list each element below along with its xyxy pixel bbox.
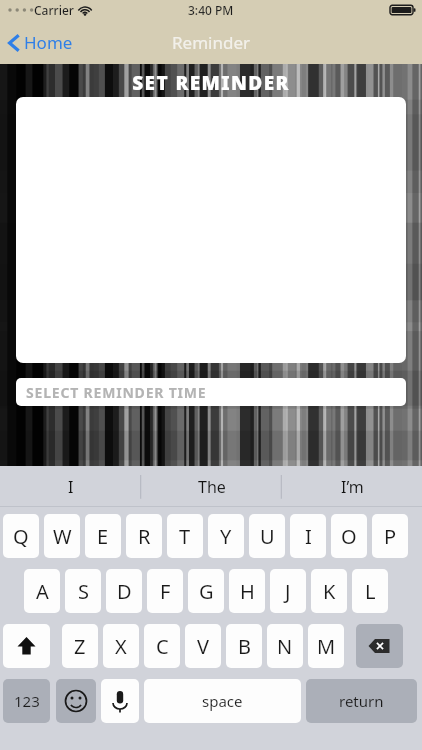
button[interactable]: A (24, 569, 60, 613)
staticText: 123 (14, 691, 40, 711)
button[interactable]: H (229, 569, 265, 613)
button[interactable]: I’m (282, 466, 422, 507)
button[interactable]: P (372, 514, 408, 558)
staticText: V (197, 633, 209, 660)
staticText: J (285, 578, 291, 605)
staticText: L (365, 578, 376, 605)
staticText: G (199, 578, 214, 605)
staticText: Reminder (172, 31, 251, 54)
staticText: P (384, 523, 397, 550)
button[interactable]: SELECT REMINDER TIME (16, 378, 406, 406)
staticText: R (138, 523, 151, 550)
button[interactable]: R (126, 514, 162, 558)
staticText: W (53, 523, 72, 550)
staticText: S (78, 578, 89, 605)
staticText: C (156, 633, 169, 660)
staticText: Y (220, 523, 232, 550)
button[interactable]: Dictate (101, 679, 139, 723)
button[interactable]: L (352, 569, 388, 613)
button[interactable]: Backspace (356, 624, 403, 668)
button[interactable]: U (249, 514, 285, 558)
button[interactable]: Q (3, 514, 39, 558)
button[interactable]: M (308, 624, 344, 668)
button[interactable]: J (270, 569, 306, 613)
button[interactable]: G (188, 569, 224, 613)
button[interactable]: D (106, 569, 142, 613)
button[interactable]: Shift (3, 624, 50, 668)
staticText: I (305, 523, 312, 550)
button[interactable]: O (331, 514, 367, 558)
staticText: SET REMINDER (132, 70, 290, 96)
staticText: T (179, 523, 191, 550)
button[interactable]: K (311, 569, 347, 613)
button[interactable]: V (185, 624, 221, 668)
staticText: Z (74, 633, 86, 660)
button[interactable]: F (147, 569, 183, 613)
button[interactable]: I (290, 514, 326, 558)
staticText: I’m (341, 476, 364, 498)
button[interactable]: The (141, 466, 282, 507)
staticText: D (117, 578, 132, 605)
button[interactable]: I (0, 466, 141, 507)
button[interactable]: N (267, 624, 303, 668)
staticText: N (277, 633, 293, 660)
staticText: return (339, 691, 384, 711)
button[interactable]: X (103, 624, 139, 668)
button[interactable]: Emoji (56, 679, 96, 723)
staticText: F (160, 578, 171, 605)
staticText: U (260, 523, 275, 550)
staticText: Carrier (34, 2, 74, 18)
staticText: X (115, 633, 127, 660)
button[interactable]: return (306, 679, 417, 723)
staticText: K (323, 578, 336, 605)
button[interactable]: T (167, 514, 203, 558)
button[interactable]: W (44, 514, 80, 558)
staticText: E (97, 523, 109, 550)
button[interactable]: Home (8, 31, 73, 54)
button[interactable]: space (144, 679, 301, 723)
staticText: O (341, 523, 357, 550)
staticText: I (68, 476, 74, 498)
button[interactable]: E (85, 514, 121, 558)
staticText: space (202, 691, 243, 711)
button[interactable]: S (65, 569, 101, 613)
button[interactable]: 123 (3, 679, 50, 723)
button[interactable]: Z (62, 624, 98, 668)
staticText: Q (13, 523, 29, 550)
button[interactable]: Y (208, 514, 244, 558)
staticText: H (240, 578, 255, 605)
button[interactable]: B (226, 624, 262, 668)
button[interactable] (16, 97, 406, 363)
staticText: SELECT REMINDER TIME (26, 383, 207, 402)
staticText: 3:40 PM (188, 2, 234, 18)
staticText: B (238, 633, 251, 660)
button[interactable]: C (144, 624, 180, 668)
staticText: M (317, 633, 336, 660)
staticText: The (198, 476, 226, 498)
staticText: Home (24, 31, 73, 54)
staticText: A (36, 578, 49, 605)
